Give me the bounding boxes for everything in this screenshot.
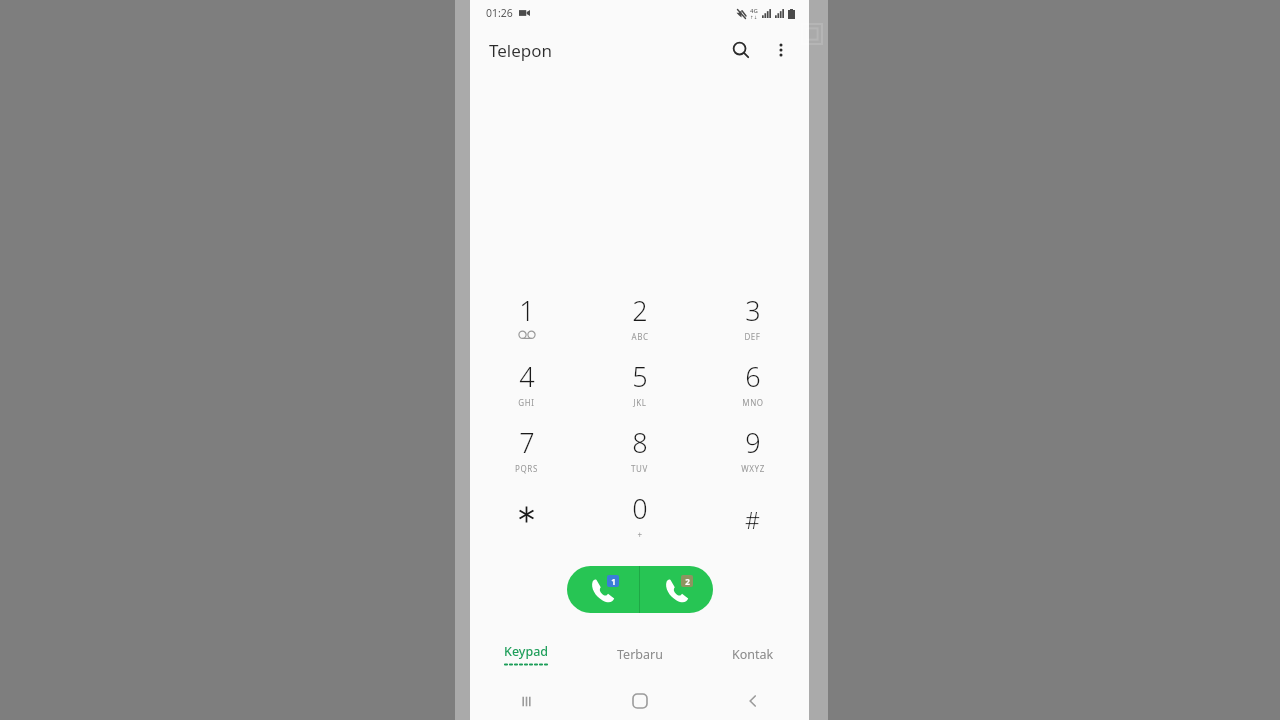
staticText: Terbaru xyxy=(617,646,663,663)
staticText: GHI xyxy=(518,397,535,408)
button[interactable]: More options xyxy=(761,30,801,70)
staticText: 0 xyxy=(632,490,648,527)
staticText: 4 xyxy=(519,358,535,395)
staticText: 2 xyxy=(632,292,648,329)
staticText: ↑↓ xyxy=(750,15,758,20)
button[interactable]: 3 xyxy=(696,282,809,348)
button[interactable]: 1 xyxy=(470,282,583,348)
staticText: Kontak xyxy=(732,646,774,663)
staticText: TUV xyxy=(631,463,648,474)
button[interactable]: # xyxy=(696,480,809,546)
staticText: 1 xyxy=(611,576,616,587)
staticText: + xyxy=(637,529,643,540)
staticText: ABC xyxy=(631,331,649,342)
button[interactable]: Home xyxy=(583,682,696,720)
staticText: 4G xyxy=(750,7,758,15)
button[interactable]: Keypad xyxy=(470,636,583,672)
button[interactable]: Call with SIM 1 xyxy=(567,566,639,613)
staticText: MNO xyxy=(742,397,764,408)
staticText: 1 xyxy=(519,292,535,329)
button[interactable]: Terbaru xyxy=(583,636,696,672)
staticText: 6 xyxy=(745,358,761,395)
button[interactable]: 4 xyxy=(470,348,583,414)
button[interactable] xyxy=(470,480,583,546)
staticText: 9 xyxy=(745,424,761,461)
button[interactable]: Back xyxy=(696,682,809,720)
staticText: 3 xyxy=(745,292,761,329)
button[interactable]: 5 xyxy=(583,348,696,414)
staticText: WXYZ xyxy=(741,463,765,474)
staticText: 8 xyxy=(632,424,648,461)
staticText: 5 xyxy=(632,358,648,395)
button[interactable]: 7 xyxy=(470,414,583,480)
staticText: Keypad xyxy=(504,643,549,660)
staticText: PQRS xyxy=(515,463,538,474)
button[interactable]: 8 xyxy=(583,414,696,480)
button[interactable]: Search xyxy=(721,30,761,70)
staticText: JKL xyxy=(633,397,647,408)
staticText: 7 xyxy=(519,424,535,461)
staticText: # xyxy=(745,504,760,535)
staticText: DEF xyxy=(744,331,761,342)
button[interactable]: Recents xyxy=(470,682,583,720)
button[interactable]: 9 xyxy=(696,414,809,480)
button[interactable]: 0 xyxy=(583,480,696,546)
staticText: 2 xyxy=(685,576,690,587)
button[interactable]: 6 xyxy=(696,348,809,414)
staticText: Telepon xyxy=(489,39,553,62)
button[interactable]: Call with SIM 2 xyxy=(640,566,713,613)
button[interactable]: 2 xyxy=(583,282,696,348)
staticText: 01:26 xyxy=(486,6,513,20)
button[interactable]: Kontak xyxy=(696,636,809,672)
